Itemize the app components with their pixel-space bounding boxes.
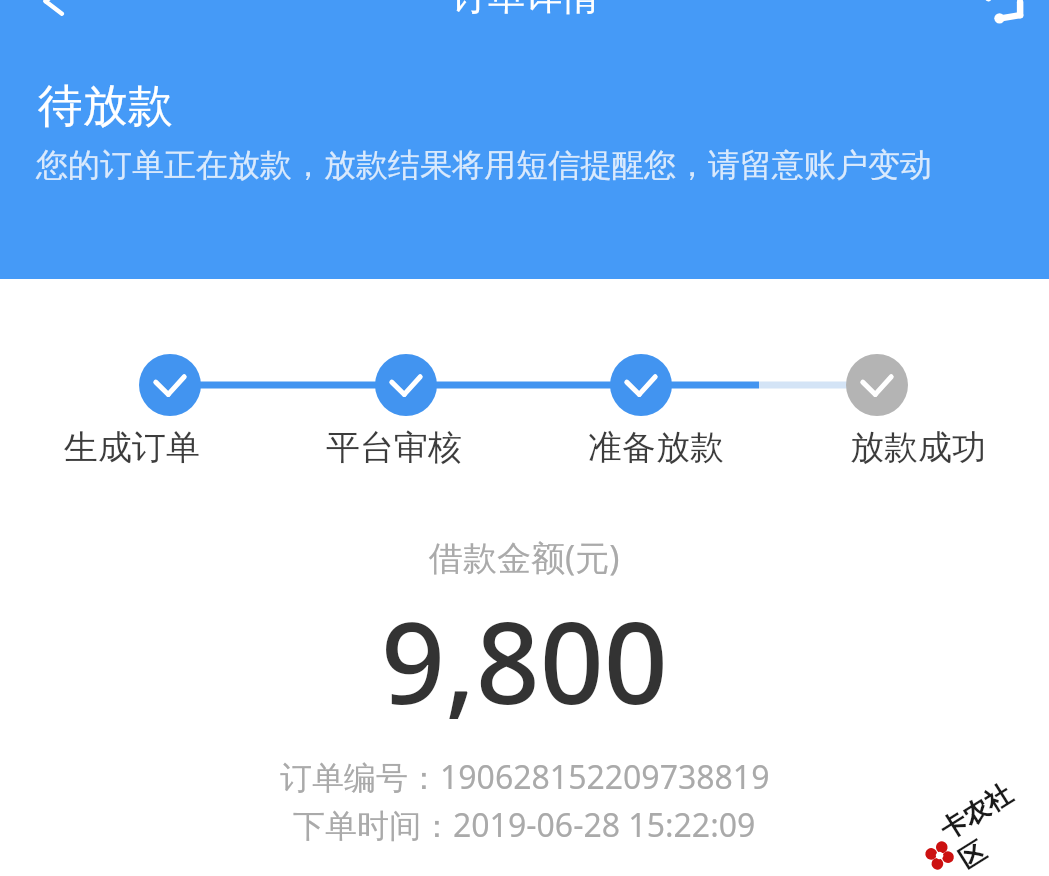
staticText: 9,800 [381, 584, 668, 737]
button[interactable]: 生成订单 [0, 426, 263, 469]
button[interactable]: 准备放款 [525, 426, 787, 469]
button[interactable]: 放款成功 [787, 426, 1049, 469]
button[interactable]: Back [20, 0, 80, 30]
staticText: 放款成功 [850, 426, 986, 469]
staticText: 订单详情 [451, 0, 599, 20]
staticText: 借款金额(元) [429, 534, 620, 580]
staticText: 平台审核 [326, 426, 462, 469]
staticText: 准备放款 [588, 426, 724, 469]
staticText: 生成订单 [64, 426, 200, 469]
staticText: 订单编号：190628152209738819 [280, 755, 770, 799]
staticText: 下单时间：2019-06-28 15:22:09 [293, 803, 756, 847]
button[interactable]: Customer service [973, 0, 1035, 32]
staticText: 待放款 [38, 78, 173, 135]
button[interactable]: 平台审核 [263, 426, 525, 469]
staticText: 您的订单正在放款，放款结果将用短信提醒您，请留意账户变动 [36, 145, 1040, 185]
staticText: 卡农社区 [934, 767, 1049, 876]
